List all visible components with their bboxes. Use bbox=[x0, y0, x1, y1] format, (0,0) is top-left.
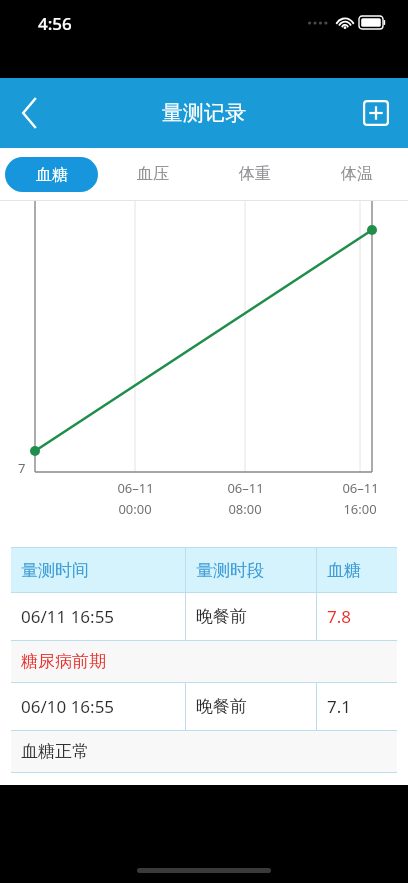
staticText: 血糖 bbox=[327, 560, 361, 581]
staticText: 7 bbox=[18, 459, 26, 477]
staticText: 00:00 bbox=[118, 500, 152, 518]
button[interactable]: 量测时间 bbox=[11, 548, 397, 592]
staticText: 晚餐前 bbox=[196, 696, 247, 717]
staticText: 06–11 bbox=[227, 479, 264, 497]
staticText: 06–11 bbox=[117, 479, 154, 497]
button[interactable]: 血压 bbox=[102, 148, 204, 200]
staticText: 血糖 bbox=[36, 165, 68, 185]
staticText: 08:00 bbox=[228, 500, 262, 518]
button[interactable]: 血糖 bbox=[0, 148, 102, 200]
staticText: 7.8 bbox=[327, 605, 352, 628]
button[interactable]: Add record bbox=[354, 91, 398, 135]
staticText: 7.1 bbox=[327, 695, 352, 718]
staticText: 晚餐前 bbox=[196, 606, 247, 627]
button[interactable]: Back bbox=[6, 89, 54, 137]
staticText: 血压 bbox=[137, 164, 169, 184]
button[interactable]: 06/10 16:55 bbox=[11, 683, 397, 730]
staticText: 06–11 bbox=[342, 479, 379, 497]
button[interactable]: 06/11 16:55 bbox=[11, 593, 397, 640]
staticText: 4:56 bbox=[38, 12, 72, 35]
button[interactable]: 体温 bbox=[306, 148, 408, 200]
staticText: 06/11 16:55 bbox=[21, 605, 115, 628]
button[interactable]: 体重 bbox=[204, 148, 306, 200]
staticText: 糖尿病前期 bbox=[21, 651, 106, 672]
staticText: 量测记录 bbox=[162, 100, 246, 126]
staticText: 06/10 16:55 bbox=[21, 695, 115, 718]
staticText: 血糖正常 bbox=[21, 741, 89, 762]
button[interactable]: 血糖正常 bbox=[21, 731, 397, 772]
staticText: 体温 bbox=[341, 164, 373, 184]
staticText: 体重 bbox=[239, 164, 271, 184]
staticText: 量测时段 bbox=[196, 560, 264, 581]
staticText: 量测时间 bbox=[21, 560, 89, 581]
button[interactable]: 糖尿病前期 bbox=[21, 641, 397, 682]
staticText: 16:00 bbox=[343, 500, 377, 518]
